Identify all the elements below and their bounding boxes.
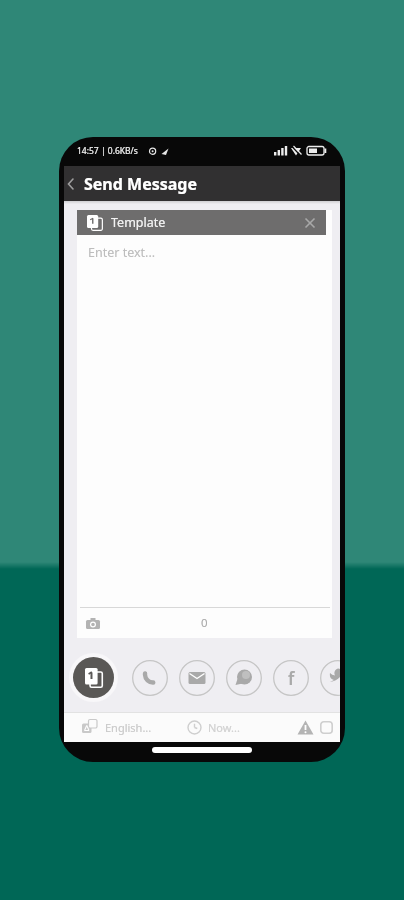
staticText: Now... — [208, 720, 240, 735]
staticText: Send Message — [84, 173, 197, 195]
staticText: f — [288, 667, 295, 690]
staticText: English... — [105, 720, 152, 735]
staticText: Template — [111, 214, 166, 231]
staticText: 14:57 | 0.6KB/s — [77, 145, 138, 157]
staticText: Enter text... — [88, 244, 156, 261]
staticText: 0 — [201, 615, 208, 631]
